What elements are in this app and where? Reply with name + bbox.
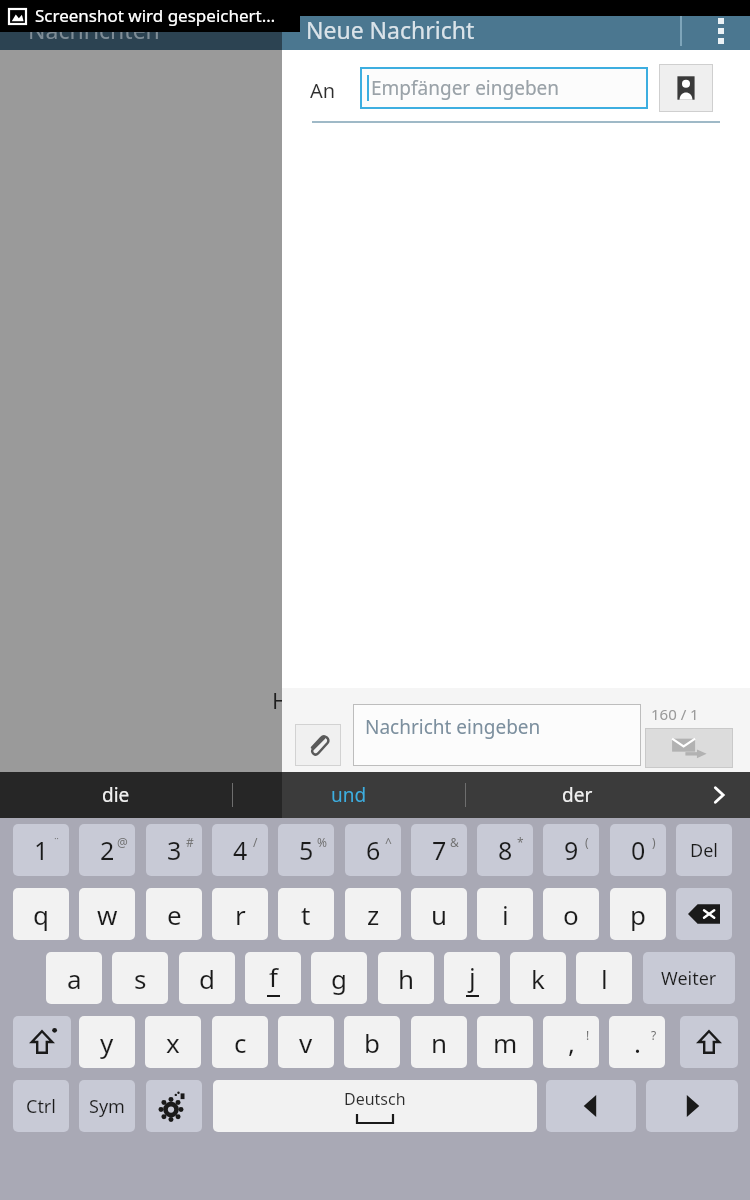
- button[interactable]: Weitere Vorschläge: [688, 772, 750, 818]
- staticText: q: [33, 897, 49, 932]
- staticText: 3: [167, 833, 182, 867]
- staticText: t: [301, 897, 311, 932]
- button[interactable]: l: [576, 952, 632, 1004]
- staticText: 6: [366, 833, 381, 867]
- button[interactable]: o: [543, 888, 599, 940]
- staticText: 1: [34, 833, 49, 867]
- staticText: ,: [568, 1025, 575, 1060]
- staticText: ): [652, 834, 656, 850]
- button[interactable]: Kontakte auswählen: [659, 64, 713, 112]
- staticText: 4: [233, 833, 248, 867]
- staticText: i: [502, 897, 509, 932]
- staticText: b: [364, 1025, 380, 1060]
- staticText: Nachrichten: [28, 14, 160, 45]
- staticText: An: [310, 77, 336, 104]
- button[interactable]: j: [444, 952, 500, 1004]
- button[interactable]: d: [179, 952, 235, 1004]
- staticText: o: [563, 897, 579, 932]
- staticText: &: [450, 834, 459, 850]
- button[interactable]: Senden: [645, 728, 733, 768]
- staticText: Weiter: [661, 966, 717, 991]
- button[interactable]: Leerzeichen: [213, 1080, 537, 1132]
- staticText: !: [586, 1027, 590, 1043]
- staticText: d: [199, 961, 215, 996]
- button[interactable]: Del: [676, 824, 732, 876]
- button[interactable]: 7: [411, 824, 467, 876]
- staticText: r: [235, 897, 246, 932]
- button[interactable]: z: [345, 888, 401, 940]
- staticText: Empfänger eingeben: [371, 75, 560, 101]
- button[interactable]: u: [411, 888, 467, 940]
- staticText: 2: [100, 833, 115, 867]
- button[interactable]: r: [212, 888, 268, 940]
- staticText: Nachricht eingeben: [365, 714, 541, 740]
- button[interactable]: Umschalttaste: [680, 1016, 738, 1068]
- button[interactable]: 9: [543, 824, 599, 876]
- button[interactable]: Weiter: [643, 952, 735, 1004]
- button[interactable]: m: [477, 1016, 533, 1068]
- button[interactable]: und: [233, 772, 465, 818]
- staticText: m: [493, 1025, 518, 1060]
- staticText: Ctrl: [26, 1094, 56, 1119]
- staticText: Del: [690, 838, 718, 863]
- button[interactable]: n: [411, 1016, 467, 1068]
- button[interactable]: 4: [212, 824, 268, 876]
- staticText: H: [272, 685, 289, 715]
- button[interactable]: Umschalttaste: [13, 1016, 71, 1068]
- staticText: n: [431, 1025, 448, 1060]
- button[interactable]: .: [609, 1016, 665, 1068]
- button[interactable]: a: [46, 952, 102, 1004]
- button[interactable]: Ctrl: [13, 1080, 69, 1132]
- button[interactable]: der: [466, 772, 688, 818]
- button[interactable]: Nachricht eingeben: [353, 704, 641, 766]
- button[interactable]: 6: [345, 824, 401, 876]
- staticText: die: [102, 782, 130, 808]
- staticText: ¨: [53, 834, 60, 850]
- button[interactable]: 0: [610, 824, 666, 876]
- button[interactable]: i: [477, 888, 533, 940]
- button[interactable]: Löschen: [676, 888, 732, 940]
- staticText: x: [166, 1025, 180, 1060]
- button[interactable]: f: [245, 952, 301, 1004]
- staticText: ^: [385, 834, 392, 850]
- button[interactable]: ,: [543, 1016, 599, 1068]
- button[interactable]: 1: [13, 824, 69, 876]
- staticText: j: [469, 959, 476, 994]
- button[interactable]: Empfänger eingeben: [360, 67, 648, 109]
- button[interactable]: h: [378, 952, 434, 1004]
- button[interactable]: b: [344, 1016, 400, 1068]
- button[interactable]: Cursor nach rechts: [646, 1080, 738, 1132]
- button[interactable]: s: [112, 952, 168, 1004]
- button[interactable]: q: [13, 888, 69, 940]
- button[interactable]: e: [146, 888, 202, 940]
- button[interactable]: k: [510, 952, 566, 1004]
- button[interactable]: p: [610, 888, 666, 940]
- button[interactable]: y: [79, 1016, 135, 1068]
- button[interactable]: g: [311, 952, 367, 1004]
- staticText: g: [331, 961, 347, 996]
- staticText: f: [269, 959, 278, 994]
- button[interactable]: 3: [146, 824, 202, 876]
- button[interactable]: Anhang hinzufügen: [295, 724, 341, 766]
- staticText: a: [67, 961, 82, 996]
- button[interactable]: Mehr Optionen: [698, 2, 744, 48]
- button[interactable]: v: [278, 1016, 334, 1068]
- button[interactable]: t: [278, 888, 334, 940]
- staticText: Neue Nachricht: [306, 14, 475, 45]
- staticText: 0: [631, 833, 646, 867]
- button[interactable]: Nachrichten: [0, 0, 282, 50]
- button[interactable]: 2: [79, 824, 135, 876]
- staticText: 7: [432, 833, 447, 867]
- button[interactable]: x: [145, 1016, 201, 1068]
- staticText: p: [630, 897, 646, 932]
- button[interactable]: Cursor nach links: [546, 1080, 636, 1132]
- staticText: .: [634, 1025, 641, 1060]
- button[interactable]: w: [79, 888, 135, 940]
- button[interactable]: 5: [278, 824, 334, 876]
- button[interactable]: c: [212, 1016, 268, 1068]
- button[interactable]: die: [0, 772, 232, 818]
- button[interactable]: 8: [477, 824, 533, 876]
- staticText: ?: [651, 1027, 657, 1043]
- button[interactable]: Sym: [79, 1080, 135, 1132]
- button[interactable]: Tastatureinstellungen: [146, 1080, 202, 1132]
